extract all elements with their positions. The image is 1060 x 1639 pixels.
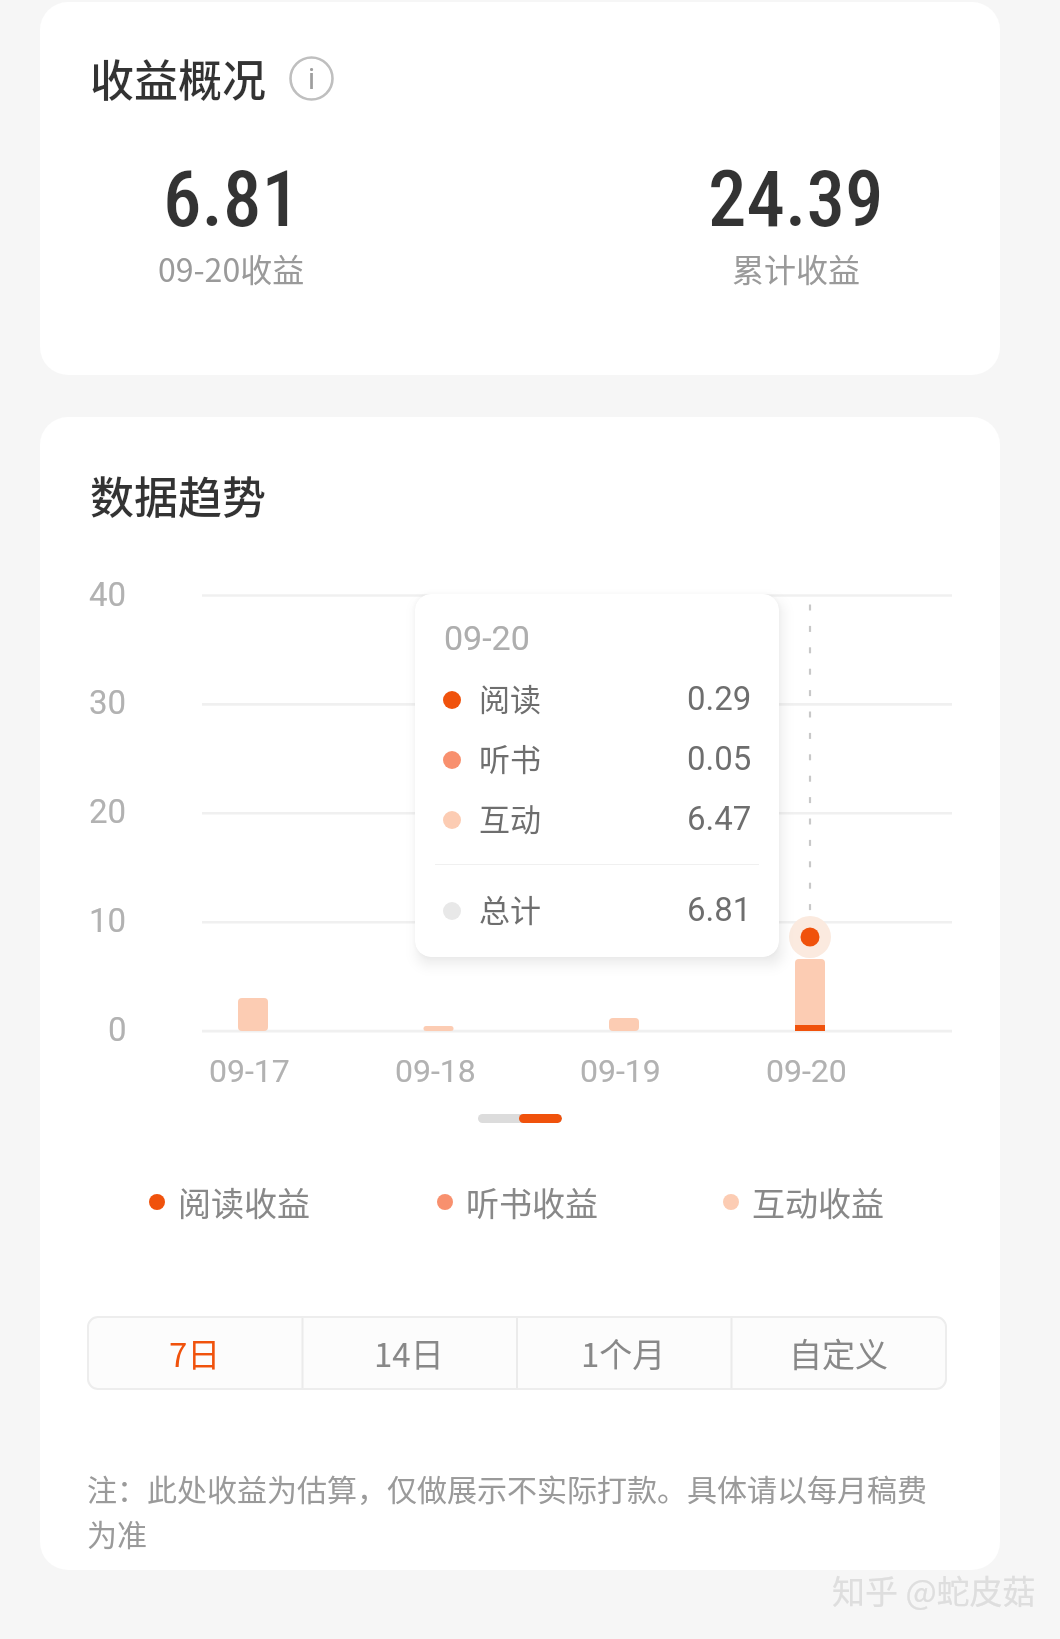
staticText: 20 [89, 792, 127, 831]
staticText: 注：此处收益为估算，仅做展示不实际打款。具体请以每月稿费为准 [87, 1466, 947, 1555]
staticText: 7日 [169, 1329, 221, 1377]
staticText: 阅读收益 [178, 1178, 310, 1226]
staticText: 听书收益 [466, 1178, 598, 1226]
button[interactable]: 14日 [302, 1317, 516, 1389]
staticText: 互动收益 [752, 1178, 884, 1226]
button[interactable]: 7日 [88, 1317, 302, 1389]
button[interactable]: 听书收益 [437, 1177, 598, 1227]
button[interactable]: 6.81 [31, 155, 431, 291]
staticText: 09-19 [580, 1052, 661, 1090]
button[interactable]: 1个月 [516, 1317, 731, 1389]
staticText: 1个月 [581, 1329, 666, 1377]
staticText: 14日 [374, 1329, 444, 1377]
staticText: 10 [89, 901, 127, 940]
button[interactable]: 24.39 [596, 155, 996, 291]
button[interactable]: 阅读收益 [149, 1177, 310, 1227]
staticText: 09-17 [209, 1052, 290, 1090]
button[interactable]: 收益概况 [90, 46, 334, 110]
staticText: 09-20收益 [158, 245, 305, 291]
staticText: i [308, 62, 316, 96]
staticText: 6.47 [687, 799, 752, 838]
staticText: 知乎 @蛇皮菇 [832, 1566, 1036, 1614]
staticText: 阅读 [479, 675, 541, 720]
staticText: 总计 [479, 886, 541, 931]
staticText: 0 [108, 1010, 127, 1049]
staticText: 09-18 [395, 1052, 476, 1090]
button[interactable]: 互动收益 [723, 1177, 884, 1227]
staticText: 累计收益 [732, 245, 861, 291]
staticText: 30 [89, 683, 127, 722]
button[interactable]: 自定义 [731, 1317, 946, 1389]
staticText: 自定义 [789, 1329, 888, 1377]
staticText: 24.39 [708, 155, 884, 245]
button[interactable]: Info [289, 56, 334, 101]
staticText: 互动 [479, 795, 541, 840]
staticText: 40 [89, 575, 127, 614]
staticText: 09-20 [444, 618, 530, 658]
staticText: 0.05 [687, 739, 752, 778]
staticText: 听书 [479, 735, 541, 780]
staticText: 收益概况 [90, 46, 266, 110]
staticText: 6.81 [687, 890, 752, 929]
staticText: 0.29 [687, 679, 752, 718]
button[interactable] [478, 1114, 562, 1123]
staticText: 6.81 [163, 155, 300, 245]
staticText: 数据趋势 [90, 463, 266, 527]
staticText: 09-20 [766, 1052, 847, 1090]
